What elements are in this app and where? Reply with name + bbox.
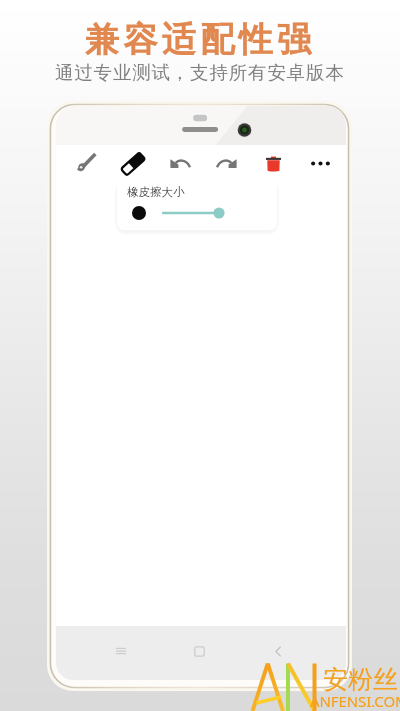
button[interactable]: More options	[297, 145, 344, 182]
button[interactable]: 橡皮擦大小	[117, 179, 277, 230]
button[interactable]: Back	[239, 626, 318, 676]
button[interactable]: Eraser	[109, 145, 156, 182]
staticText: 兼容适配性强	[85, 18, 316, 61]
staticText: 安粉丝	[323, 664, 398, 695]
button[interactable]: Brush	[61, 145, 109, 182]
button[interactable]: Redo	[203, 145, 250, 182]
staticText: ANFENSI.COM	[310, 691, 400, 711]
button[interactable]: Undo	[156, 145, 203, 182]
staticText: 通过专业测试，支持所有安卓版本	[55, 61, 345, 84]
staticText: 橡皮擦大小	[127, 185, 185, 199]
button[interactable]: Delete	[250, 145, 297, 182]
